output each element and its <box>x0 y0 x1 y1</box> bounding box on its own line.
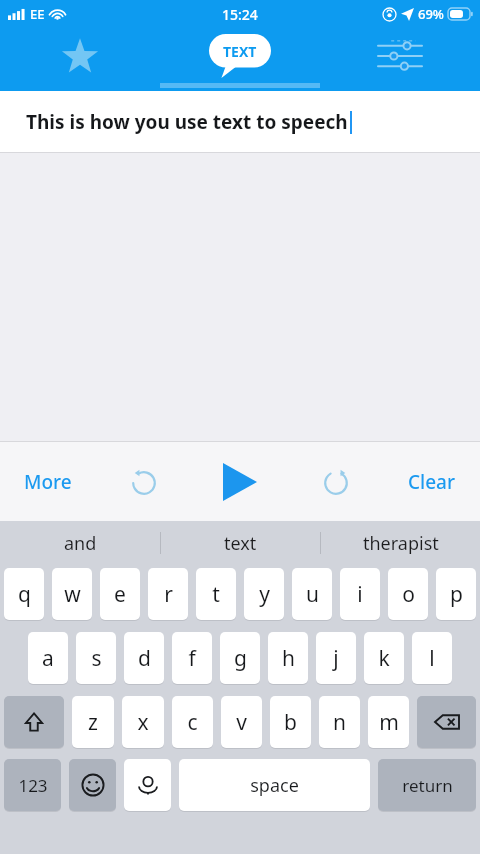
staticText: q <box>18 580 31 609</box>
staticText: l <box>429 644 435 673</box>
staticText: 15:24 <box>222 5 258 24</box>
staticText: y <box>259 580 270 609</box>
staticText: return <box>402 774 453 797</box>
button[interactable]: Emoji <box>69 759 116 811</box>
staticText: o <box>402 580 415 609</box>
button[interactable]: h <box>268 632 308 684</box>
button[interactable]: Forward <box>288 442 384 521</box>
staticText: therapist <box>363 531 439 556</box>
button[interactable]: k <box>364 632 404 684</box>
staticText: More <box>24 469 72 495</box>
button[interactable]: m <box>368 696 409 748</box>
staticText: c <box>187 708 198 737</box>
button[interactable]: f <box>172 632 212 684</box>
staticText: g <box>234 644 247 673</box>
button[interactable]: Shift <box>4 696 64 748</box>
button[interactable]: e <box>100 568 140 620</box>
button[interactable]: text <box>161 521 320 565</box>
staticText: 123 <box>18 774 48 797</box>
button[interactable]: b <box>270 696 311 748</box>
button[interactable]: p <box>436 568 476 620</box>
staticText: k <box>378 644 390 673</box>
button[interactable]: y <box>244 568 284 620</box>
staticText: i <box>357 580 363 609</box>
staticText: d <box>138 644 151 673</box>
staticText: e <box>114 580 126 609</box>
button[interactable]: Rewind <box>96 442 192 521</box>
button[interactable]: c <box>172 696 213 748</box>
staticText: z <box>88 708 98 737</box>
staticText: m <box>379 708 399 737</box>
button[interactable]: s <box>76 632 116 684</box>
button[interactable]: t <box>196 568 236 620</box>
staticText: 69% <box>418 5 444 23</box>
staticText: t <box>212 580 220 609</box>
staticText: u <box>306 580 319 609</box>
button[interactable]: return <box>378 759 476 811</box>
button[interactable]: u <box>292 568 332 620</box>
button[interactable]: n <box>319 696 360 748</box>
button[interactable]: a <box>28 632 68 684</box>
staticText: This is how you use text to speech <box>26 109 348 135</box>
staticText: w <box>64 580 81 609</box>
staticText: x <box>137 708 149 737</box>
button[interactable]: Settings <box>320 28 480 83</box>
button[interactable]: Favourites <box>0 28 160 83</box>
staticText: s <box>91 644 102 673</box>
button[interactable]: z <box>72 696 114 748</box>
staticText: space <box>250 773 299 798</box>
staticText: v <box>236 708 247 737</box>
button[interactable]: Clear <box>384 442 480 521</box>
staticText: and <box>64 531 97 556</box>
button[interactable]: Text <box>160 28 320 83</box>
staticText: f <box>188 644 196 673</box>
button[interactable]: j <box>316 632 356 684</box>
staticText: n <box>333 708 346 737</box>
button[interactable]: space <box>179 759 370 811</box>
button[interactable]: o <box>388 568 428 620</box>
button[interactable]: and <box>0 521 160 565</box>
staticText: a <box>42 644 54 673</box>
button[interactable]: 123 <box>4 759 61 811</box>
button[interactable]: i <box>340 568 380 620</box>
staticText: TEXT <box>223 42 257 61</box>
staticText: text <box>224 531 257 556</box>
staticText: EE <box>30 5 45 23</box>
button[interactable]: therapist <box>321 521 480 565</box>
staticText: p <box>450 580 463 609</box>
button[interactable]: x <box>122 696 164 748</box>
button[interactable]: Dictate <box>124 759 171 811</box>
button[interactable]: Play <box>192 442 288 521</box>
button[interactable]: g <box>220 632 260 684</box>
button[interactable]: r <box>148 568 188 620</box>
button[interactable]: q <box>4 568 44 620</box>
staticText: j <box>333 644 339 673</box>
staticText: b <box>284 708 297 737</box>
button[interactable]: d <box>124 632 164 684</box>
button[interactable]: More <box>0 442 96 521</box>
staticText: Clear <box>408 469 456 495</box>
staticText: h <box>282 644 295 673</box>
button[interactable]: v <box>221 696 262 748</box>
button[interactable]: l <box>412 632 452 684</box>
button[interactable]: w <box>52 568 92 620</box>
staticText: r <box>164 580 173 609</box>
button[interactable]: Backspace <box>417 696 476 748</box>
